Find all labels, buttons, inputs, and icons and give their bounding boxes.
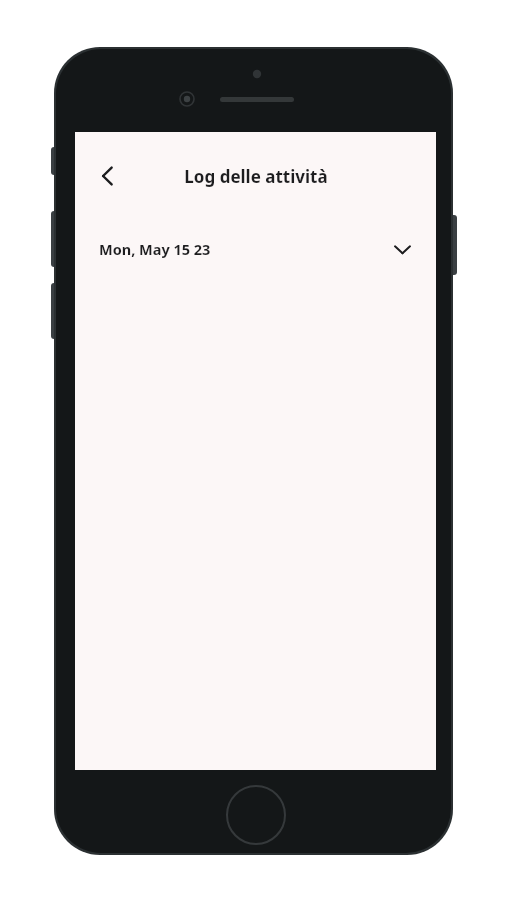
other: Home xyxy=(226,785,286,845)
staticText: Mon, May 15 23 xyxy=(99,239,211,259)
staticText: Log delle attività xyxy=(184,165,328,188)
button[interactable]: Back xyxy=(83,152,131,200)
button[interactable]: Mon, May 15 23 xyxy=(75,220,436,278)
